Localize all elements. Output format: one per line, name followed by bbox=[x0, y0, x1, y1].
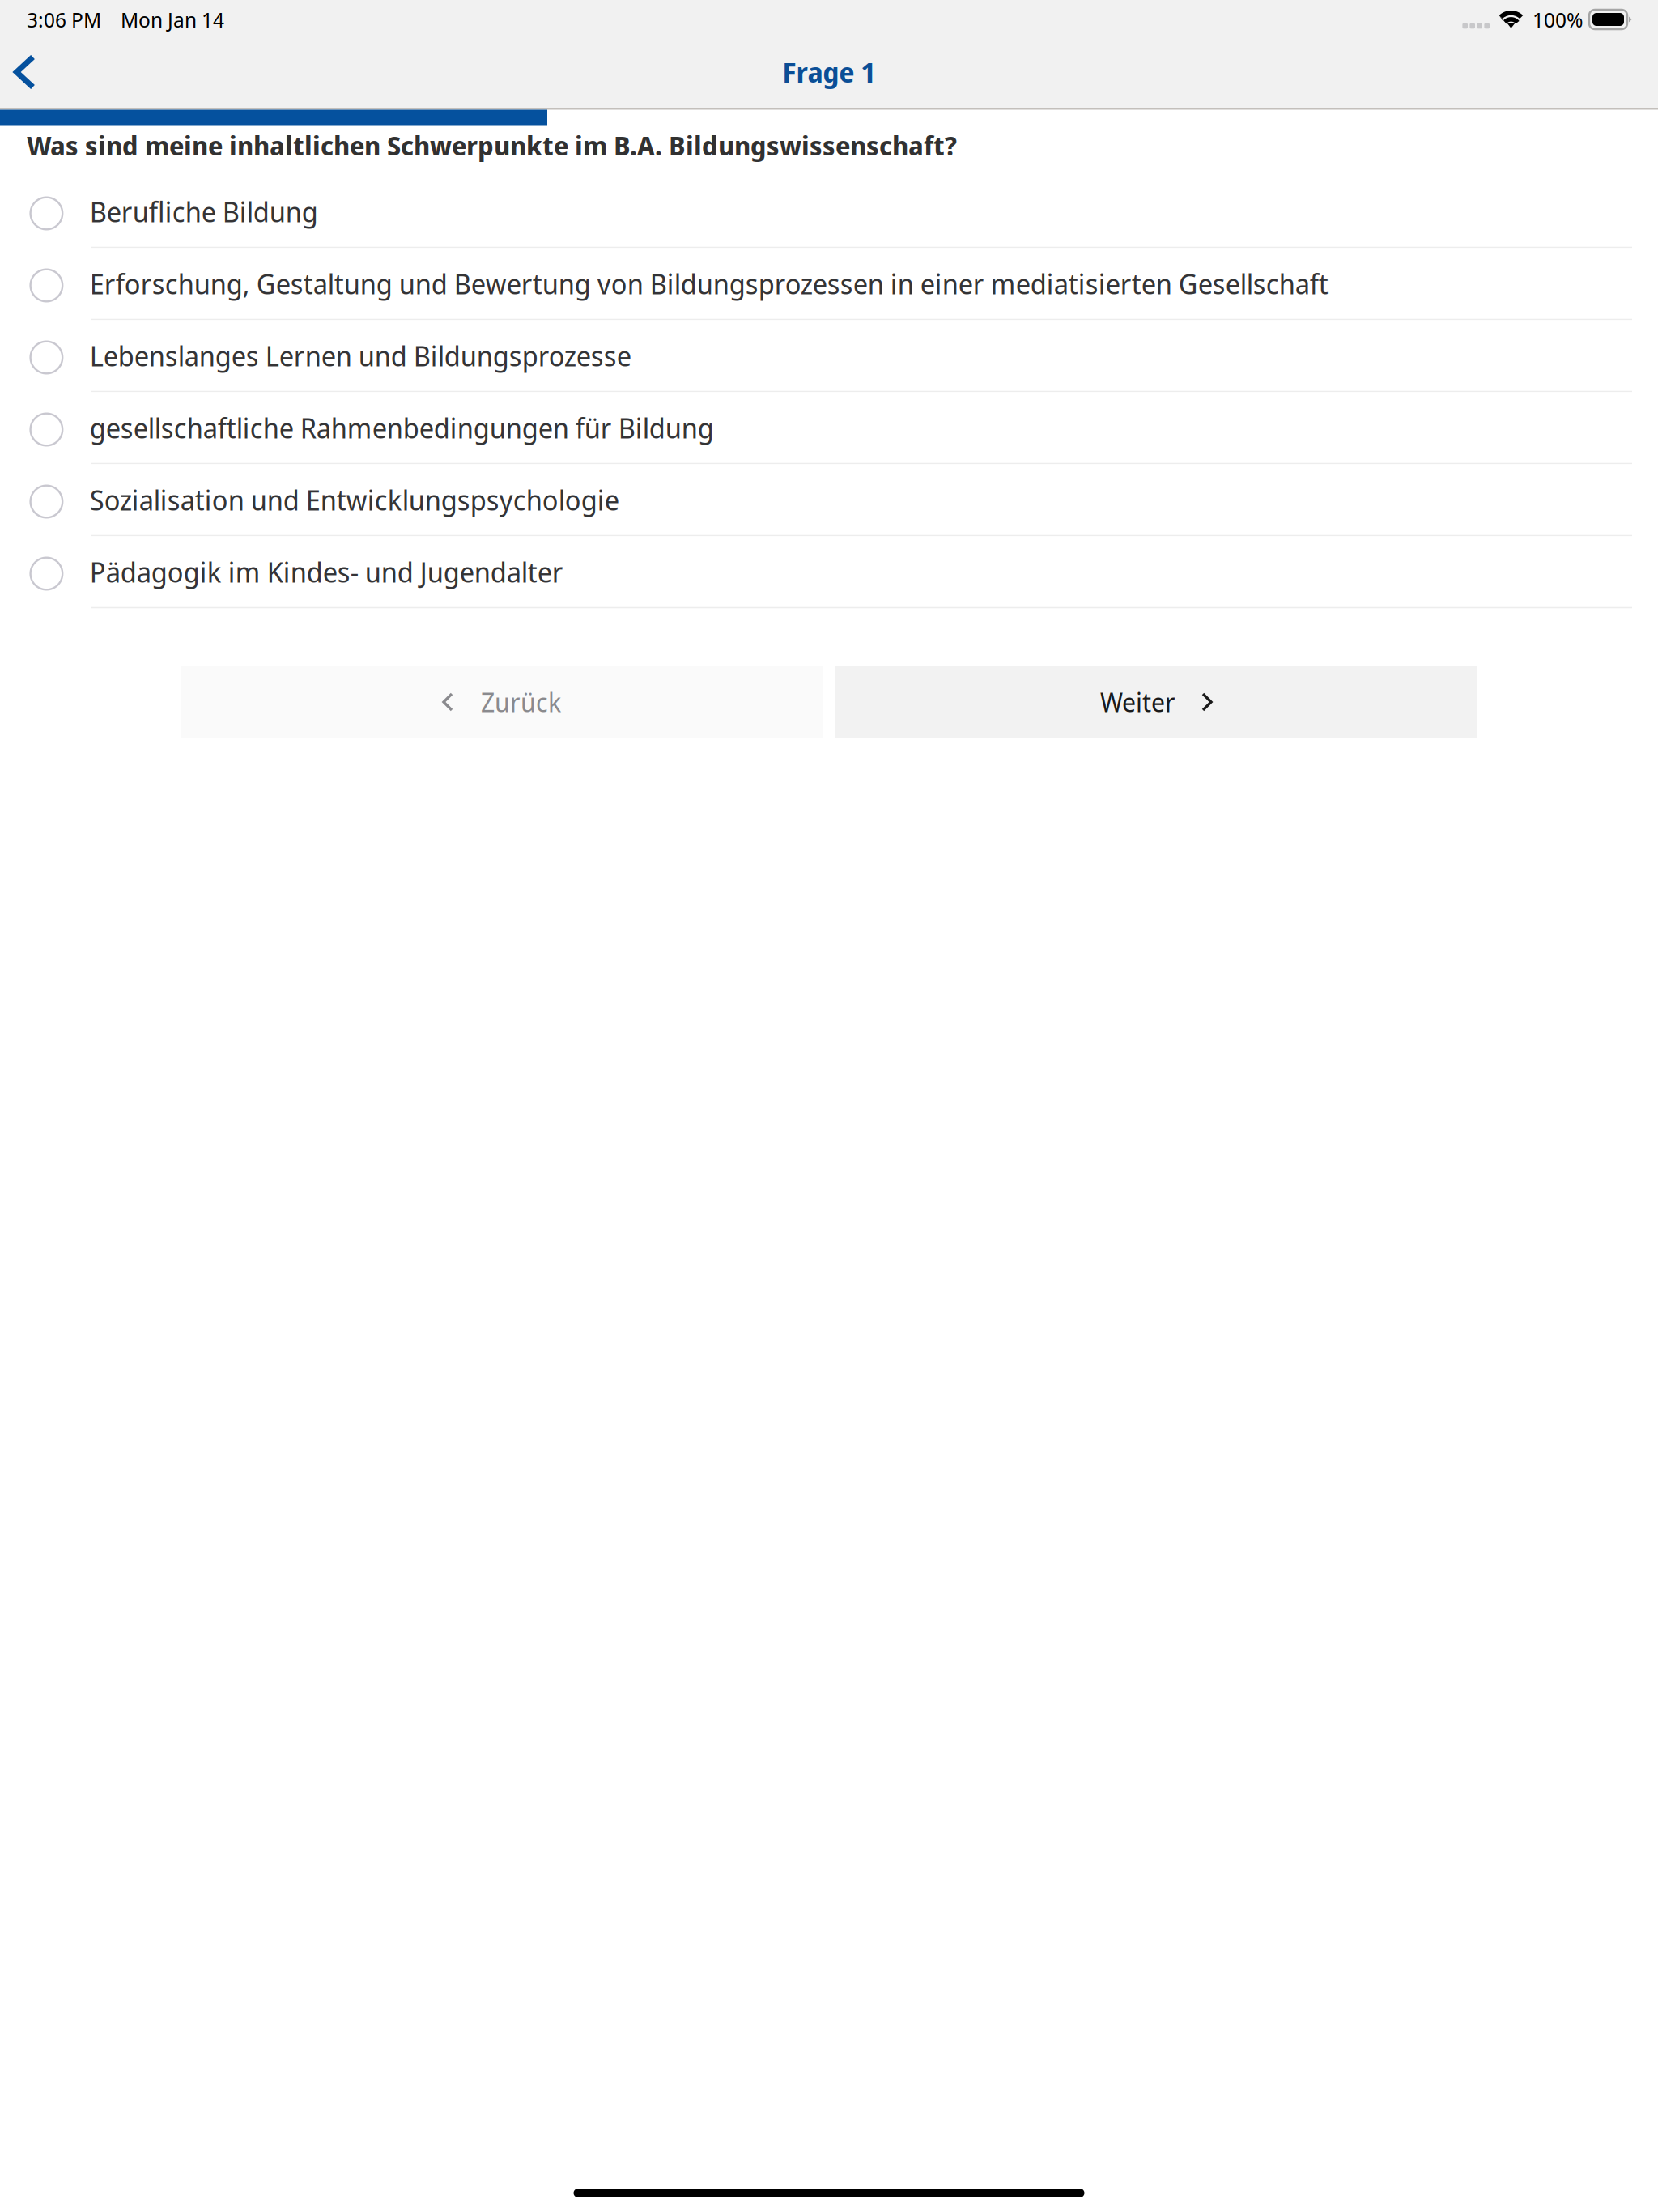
staticText: Was sind meine inhaltlichen Schwerpunkte… bbox=[27, 127, 957, 163]
button[interactable]: Pädagogik im Kindes- und Jugendalter bbox=[0, 536, 1658, 608]
staticText: Berufliche Bildung bbox=[90, 192, 318, 230]
staticText: Weiter bbox=[1100, 684, 1175, 720]
staticText: Mon Jan 14 bbox=[121, 5, 224, 34]
staticText: Erforschung, Gestaltung und Bewertung vo… bbox=[90, 264, 1328, 302]
staticText: Frage 1 bbox=[782, 54, 876, 90]
button[interactable]: Zurück bbox=[181, 666, 823, 738]
button[interactable]: Erforschung, Gestaltung und Bewertung vo… bbox=[0, 248, 1658, 320]
button[interactable]: gesellschaftliche Rahmenbedingungen für … bbox=[0, 392, 1658, 464]
button[interactable]: Berufliche Bildung bbox=[0, 176, 1658, 248]
staticText: Pädagogik im Kindes- und Jugendalter bbox=[90, 553, 563, 591]
button[interactable]: Weiter bbox=[835, 666, 1477, 738]
staticText: 100% bbox=[1533, 5, 1583, 34]
staticText: Zurück bbox=[481, 684, 561, 720]
button[interactable]: Back bbox=[0, 45, 60, 100]
staticText: gesellschaftliche Rahmenbedingungen für … bbox=[90, 408, 714, 447]
button[interactable]: Lebenslanges Lernen und Bildungsprozesse bbox=[0, 320, 1658, 392]
staticText: Sozialisation und Entwicklungspsychologi… bbox=[90, 480, 619, 519]
staticText: Lebenslanges Lernen und Bildungsprozesse bbox=[90, 336, 631, 374]
button[interactable]: Sozialisation und Entwicklungspsychologi… bbox=[0, 464, 1658, 536]
staticText: 3:06 PM bbox=[27, 5, 101, 34]
